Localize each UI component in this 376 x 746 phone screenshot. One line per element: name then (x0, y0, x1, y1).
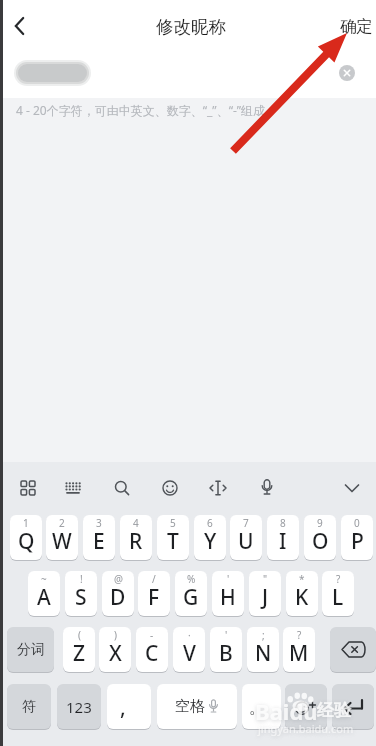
button[interactable]: 6 (194, 515, 226, 560)
button[interactable] (57, 472, 89, 504)
staticText: U (238, 527, 254, 556)
staticText: 4 - 20个字符，可由中英文、数字、“_”、“-”组成 (16, 102, 266, 118)
button[interactable]: 7 (230, 515, 262, 560)
staticText: ' (227, 572, 230, 586)
staticText: V (183, 639, 196, 668)
staticText: 6 (207, 516, 213, 530)
button[interactable]: % (175, 571, 207, 616)
button[interactable]: 空格 (157, 684, 237, 729)
staticText: ( (78, 628, 81, 642)
staticText: 9 (317, 516, 323, 530)
staticText: S (75, 583, 87, 612)
staticText: 3 (96, 516, 102, 530)
staticText: * (299, 572, 305, 586)
staticText: T (167, 527, 179, 556)
button[interactable]: ! (65, 571, 97, 616)
staticText: H (220, 583, 236, 612)
staticText: 1 (23, 516, 29, 530)
staticText: Y (204, 527, 217, 556)
staticText: ' (225, 628, 228, 642)
staticText: R (129, 527, 143, 556)
button[interactable]: 1 (10, 515, 42, 560)
staticText: 2 (59, 516, 65, 530)
button[interactable]: ? (322, 571, 354, 616)
button[interactable]: 4 (120, 515, 152, 560)
staticText: 7 (243, 516, 249, 530)
staticText: ~ (41, 572, 47, 586)
staticText: D (110, 583, 126, 612)
button[interactable] (335, 61, 359, 85)
staticText: @ (114, 572, 123, 586)
button[interactable] (3, 0, 37, 51)
staticText: G (183, 583, 199, 612)
button[interactable]: - (136, 627, 168, 672)
staticText: 8 (280, 516, 286, 530)
staticText: ? (297, 628, 302, 642)
button[interactable]: 符 (7, 684, 51, 729)
button[interactable]: ; (247, 627, 279, 672)
staticText: L (332, 583, 344, 612)
button[interactable] (12, 472, 44, 504)
staticText: 符 (22, 698, 36, 716)
staticText: Z (73, 639, 86, 668)
button[interactable]: ~ (28, 571, 60, 616)
staticText: Baidu (255, 696, 318, 726)
staticText: 5 (170, 516, 176, 530)
staticText: ) (114, 628, 117, 642)
staticText: ; (262, 628, 265, 642)
staticText: 经验 (317, 700, 351, 721)
staticText: 123 (66, 697, 92, 717)
button[interactable]: · (173, 627, 205, 672)
button[interactable]: 5 (157, 515, 189, 560)
staticText: 空格 (175, 697, 205, 716)
button[interactable]: 分词 (7, 627, 54, 672)
staticText: N (255, 639, 272, 668)
staticText: 。 (249, 697, 266, 718)
button[interactable]: , (107, 684, 151, 729)
button[interactable]: ' (212, 571, 244, 616)
button[interactable] (251, 472, 283, 504)
button[interactable] (285, 684, 327, 729)
button[interactable]: ) (99, 627, 131, 672)
button[interactable] (332, 684, 374, 729)
button[interactable]: * (286, 571, 318, 616)
staticText: 确定 (340, 16, 373, 37)
staticText: F (148, 583, 160, 612)
staticText: E (93, 527, 105, 556)
button[interactable]: @ (102, 571, 134, 616)
staticText: P (351, 527, 364, 556)
staticText: W (52, 527, 72, 556)
button[interactable]: " (249, 571, 281, 616)
staticText: 修改昵称 (156, 16, 226, 38)
staticText: jingyan.baidu.com (258, 721, 354, 736)
button[interactable] (154, 472, 186, 504)
staticText: A (37, 583, 51, 612)
button[interactable] (106, 472, 138, 504)
staticText: M (289, 639, 309, 668)
staticText: " (263, 572, 268, 586)
staticText: - (150, 628, 154, 642)
staticText: 4 (133, 516, 139, 530)
staticText: / (152, 572, 156, 586)
button[interactable]: 9 (304, 515, 336, 560)
staticText: O (312, 527, 329, 556)
button[interactable]: 确定 (340, 16, 376, 37)
staticText: · (188, 628, 191, 642)
button[interactable]: 3 (83, 515, 115, 560)
button[interactable]: ' (210, 627, 242, 672)
staticText: I (279, 527, 287, 556)
button[interactable]: 0 (341, 515, 373, 560)
staticText: Q (18, 527, 35, 556)
button[interactable]: / (138, 571, 170, 616)
button[interactable]: ? (283, 627, 315, 672)
button[interactable]: 2 (46, 515, 78, 560)
button[interactable] (202, 472, 234, 504)
button[interactable]: 123 (57, 684, 101, 729)
button[interactable]: 8 (267, 515, 299, 560)
button[interactable] (336, 472, 368, 504)
button[interactable]: ( (63, 627, 95, 672)
staticText: B (219, 639, 233, 668)
button[interactable] (330, 627, 376, 672)
staticText: K (295, 583, 309, 612)
button[interactable]: 。 (242, 684, 281, 729)
